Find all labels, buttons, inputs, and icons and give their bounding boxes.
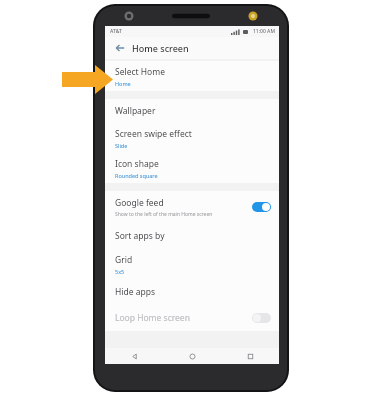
staticText: Grid: [115, 254, 133, 266]
button[interactable]: Google feed toggle, on: [252, 202, 271, 212]
button[interactable]: Loop Home screen toggle, off: [252, 313, 271, 323]
button[interactable]: Google feed: [105, 191, 279, 223]
button[interactable]: Home: [163, 348, 221, 364]
staticText: Screen swipe effect: [115, 128, 192, 140]
staticText: Icon shape: [115, 158, 159, 170]
staticText: 5x5: [115, 268, 125, 275]
staticText: 11:00 AM: [253, 28, 275, 35]
staticText: Home screen: [132, 42, 189, 54]
button[interactable]: Grid: [105, 249, 279, 279]
staticText: Hide apps: [115, 286, 156, 298]
staticText: Slide: [115, 142, 128, 149]
button[interactable]: Back: [113, 41, 127, 55]
staticText: Rounded square: [115, 172, 158, 179]
button[interactable]: Recent apps: [221, 348, 279, 364]
staticText: Loop Home screen: [115, 312, 252, 324]
staticText: Google feed: [115, 197, 164, 209]
button[interactable]: Icon shape: [105, 153, 279, 183]
button[interactable]: Hide apps: [105, 279, 279, 305]
button[interactable]: Wallpaper: [105, 99, 279, 123]
staticText: Wallpaper: [115, 105, 156, 117]
button[interactable]: Screen swipe effect: [105, 123, 279, 153]
staticText: Show to the left of the main Home screen: [115, 211, 213, 218]
staticText: AT&T: [110, 28, 122, 35]
button[interactable]: Select Home: [105, 61, 279, 91]
staticText: Select Home: [115, 66, 165, 78]
button[interactable]: Back: [105, 348, 163, 364]
staticText: Sort apps by: [115, 230, 165, 242]
button[interactable]: Sort apps by: [105, 223, 279, 249]
button[interactable]: Loop Home screen: [105, 305, 279, 331]
staticText: Home: [115, 80, 131, 87]
